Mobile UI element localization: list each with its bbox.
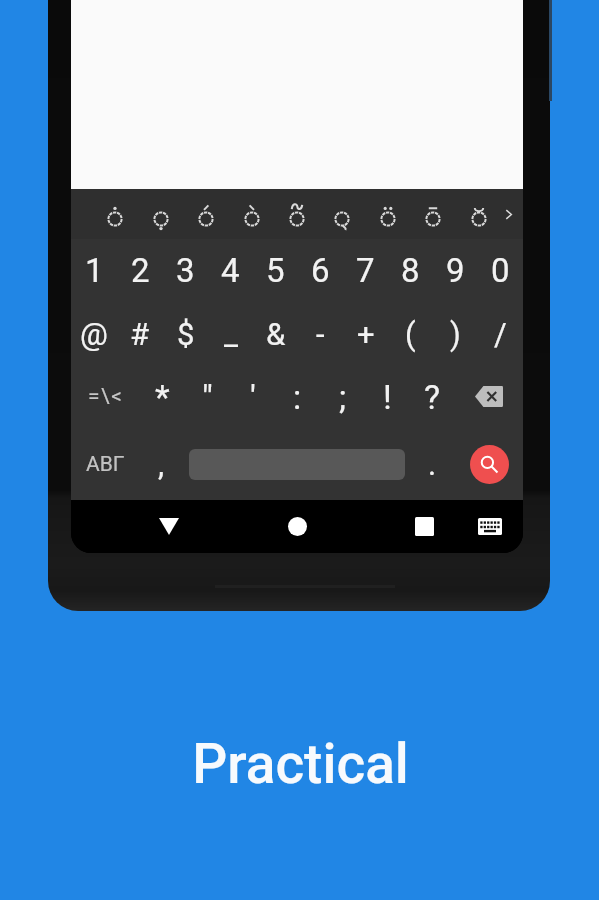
button[interactable]: +	[343, 302, 388, 365]
button[interactable]: 9	[433, 239, 478, 302]
staticText: 5	[266, 251, 285, 290]
button[interactable]: ;	[320, 365, 365, 428]
staticText: 4	[221, 251, 240, 290]
button[interactable]: Home	[277, 506, 317, 546]
staticText: @	[80, 316, 108, 352]
button[interactable]: )	[433, 302, 478, 365]
button[interactable]: #	[117, 302, 163, 365]
staticText: .	[428, 446, 437, 482]
staticText: "	[202, 377, 213, 417]
button[interactable]	[184, 189, 228, 239]
staticText: -	[316, 316, 325, 352]
button[interactable]: (	[388, 302, 433, 365]
button[interactable]	[93, 189, 137, 239]
button[interactable]: _	[208, 302, 253, 365]
button[interactable]: $	[163, 302, 208, 365]
button[interactable]: 0	[478, 239, 523, 302]
button[interactable]: :	[275, 365, 320, 428]
staticText: '	[250, 377, 256, 417]
button[interactable]: 3	[163, 239, 208, 302]
button[interactable]: Space	[189, 428, 405, 500]
staticText: :	[293, 377, 302, 417]
staticText: /	[494, 316, 507, 352]
staticText: 9	[446, 251, 465, 290]
staticText: ;	[339, 377, 347, 417]
button[interactable]: 6	[298, 239, 343, 302]
button[interactable]: '	[230, 365, 275, 428]
button[interactable]: Backspace	[455, 365, 523, 428]
button[interactable]: ,	[139, 428, 184, 500]
button[interactable]: АВГ	[71, 428, 139, 500]
button[interactable]: *	[140, 365, 185, 428]
staticText: (	[405, 316, 416, 352]
staticText: ?	[424, 377, 441, 417]
button[interactable]: 7	[343, 239, 388, 302]
staticText: 7	[356, 251, 375, 290]
button[interactable]: 2	[117, 239, 163, 302]
staticText: 2	[131, 251, 150, 290]
button[interactable]	[411, 189, 455, 239]
button[interactable]	[457, 189, 501, 239]
staticText: $	[177, 316, 195, 352]
staticText: 6	[311, 251, 330, 290]
button[interactable]: Back	[149, 506, 189, 546]
button[interactable]: Recents	[404, 506, 444, 546]
staticText: +	[357, 316, 375, 352]
button[interactable]	[366, 189, 410, 239]
button[interactable]: .	[410, 428, 455, 500]
button[interactable]: 5	[253, 239, 298, 302]
button[interactable]: -	[298, 302, 343, 365]
staticText: _	[224, 316, 238, 352]
staticText: *	[155, 377, 170, 417]
button[interactable]: Search	[455, 428, 523, 500]
button[interactable]: "	[185, 365, 230, 428]
button[interactable]: !	[365, 365, 410, 428]
button[interactable]: @	[71, 302, 117, 365]
button[interactable]	[230, 189, 274, 239]
button[interactable]: =\<	[71, 365, 140, 428]
staticText: !	[383, 377, 392, 417]
staticText: =\<	[88, 384, 124, 409]
button[interactable]	[139, 189, 183, 239]
button[interactable]: /	[478, 302, 523, 365]
staticText: )	[450, 316, 461, 352]
button[interactable]: 1	[71, 239, 117, 302]
staticText: 1	[85, 251, 104, 290]
staticText: ,	[158, 446, 165, 482]
button[interactable]: 4	[208, 239, 253, 302]
staticText: 8	[401, 251, 420, 290]
staticText: Practical	[1, 732, 599, 796]
button[interactable]: Switch keyboard	[470, 506, 510, 546]
staticText: #	[130, 316, 150, 352]
button[interactable]	[320, 189, 364, 239]
button[interactable]: ?	[410, 365, 455, 428]
button[interactable]: &	[253, 302, 298, 365]
button[interactable]: 8	[388, 239, 433, 302]
staticText: 0	[491, 251, 510, 290]
staticText: АВГ	[86, 452, 125, 477]
staticText: &	[266, 316, 286, 352]
button[interactable]: More accents	[493, 189, 523, 239]
button[interactable]	[275, 189, 319, 239]
staticText: 3	[176, 251, 195, 290]
